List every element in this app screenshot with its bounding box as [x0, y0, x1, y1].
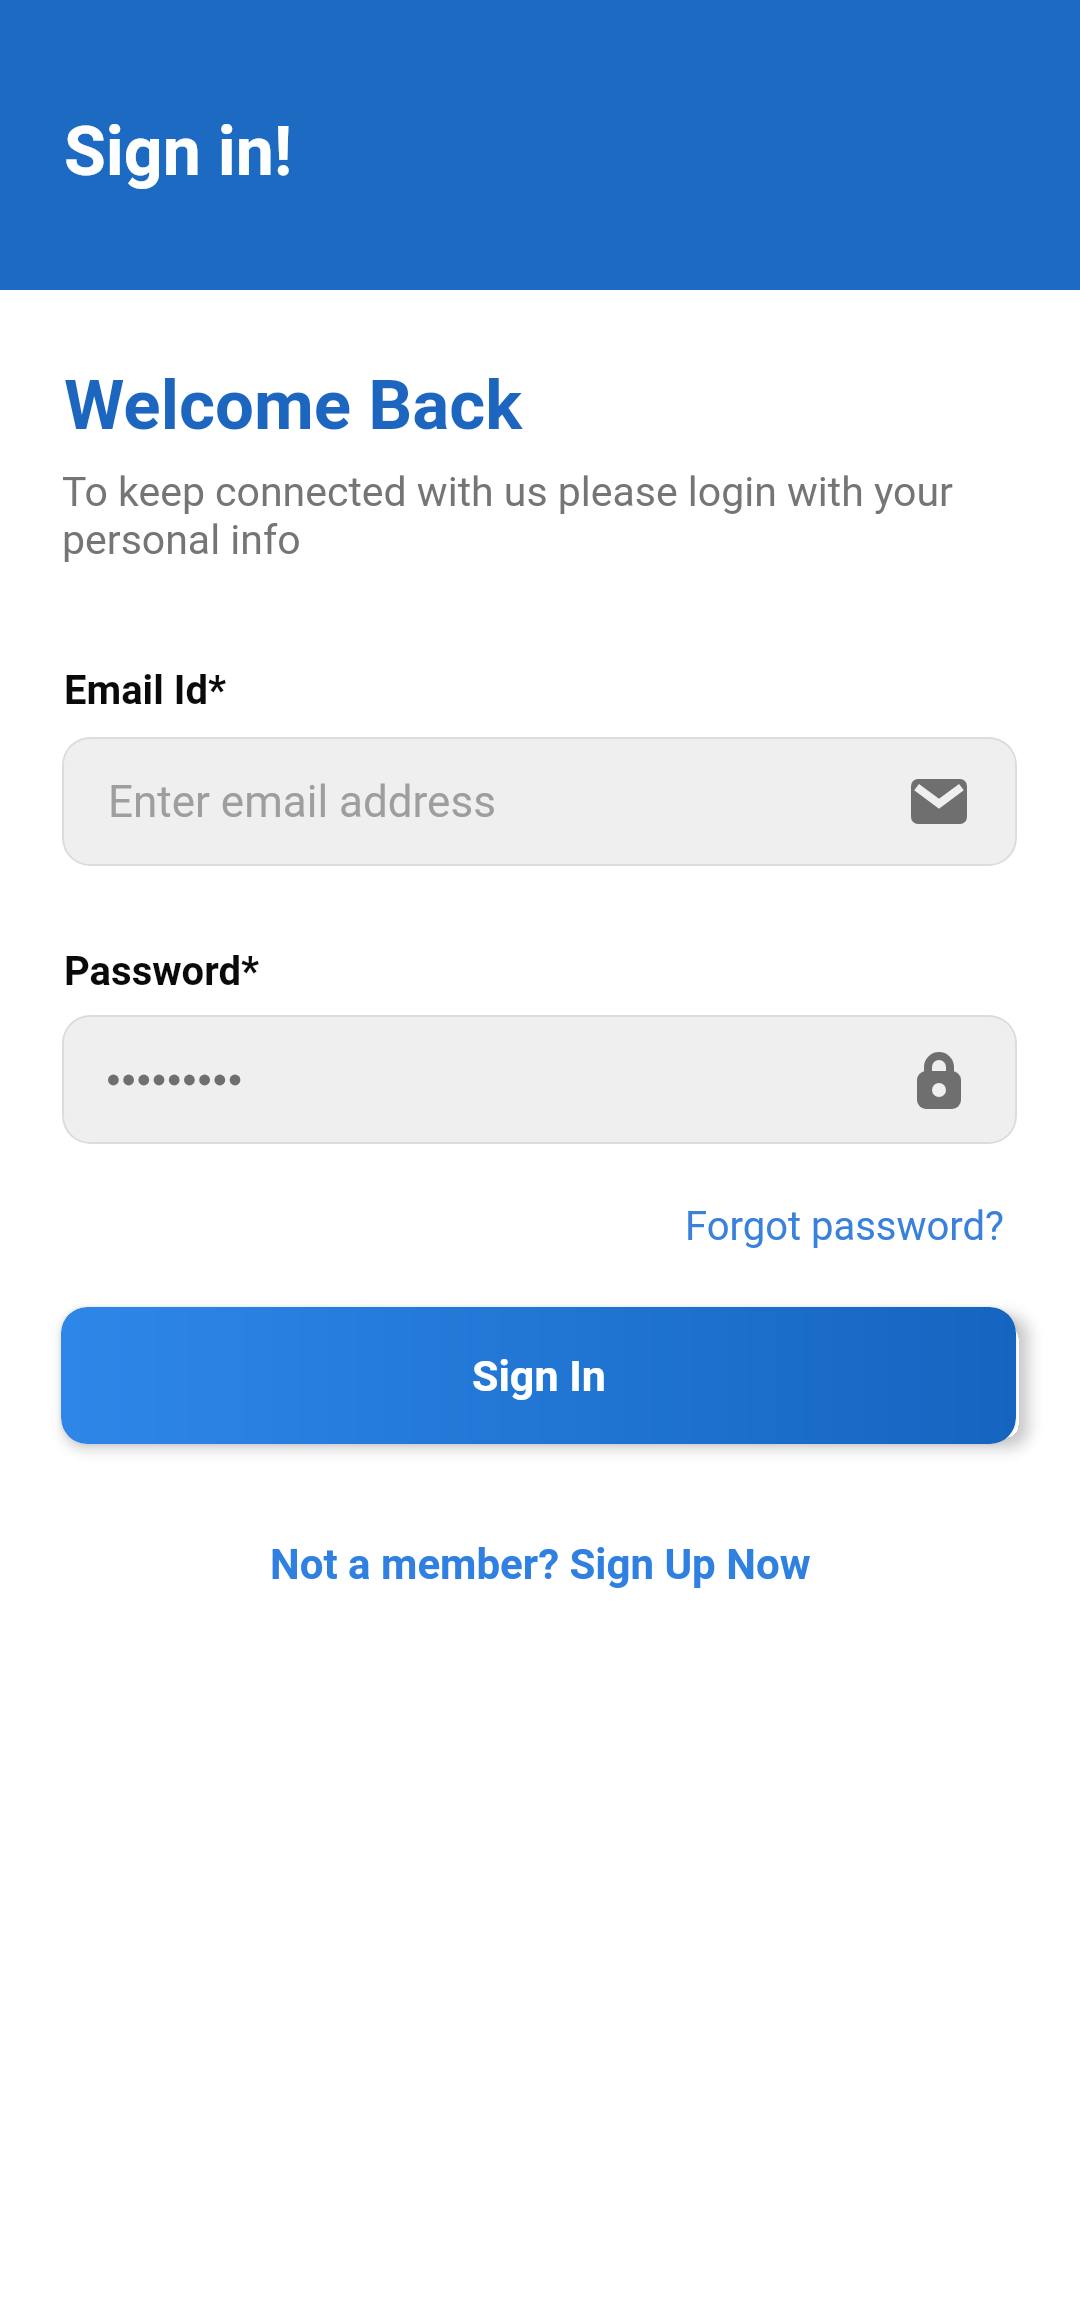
staticText: Sign In [472, 1351, 606, 1401]
button[interactable]: Enter email address [62, 737, 1017, 866]
staticText: Enter email address [108, 776, 496, 828]
button[interactable]: Sign In [61, 1307, 1016, 1444]
button[interactable]: Forgot password? [685, 1203, 1005, 1250]
button[interactable]: Not a member? Sign Up Now [270, 1540, 811, 1589]
staticText: Sign in! [64, 112, 293, 192]
button[interactable] [62, 1015, 1017, 1144]
staticText: To keep connected with us please login w… [62, 468, 953, 564]
staticText: Password* [64, 948, 260, 995]
staticText: Email Id* [64, 667, 227, 714]
staticText: Welcome Back [64, 365, 523, 446]
